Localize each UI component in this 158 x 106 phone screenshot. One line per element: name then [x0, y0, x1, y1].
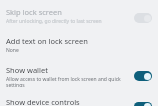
button[interactable]: Toggle Show wallet	[134, 71, 152, 81]
staticText: Show wallet	[6, 65, 48, 75]
button[interactable]: Toggle Show device controls	[134, 102, 152, 106]
button[interactable]: Show wallet	[0, 65, 158, 87]
button[interactable]: Add text on lock screen	[0, 36, 158, 53]
button[interactable]: Skip lock screen	[0, 7, 158, 24]
button[interactable]: Toggle Skip lock screen	[134, 13, 152, 23]
staticText: Add text on lock screen	[6, 36, 88, 46]
staticText: Allow access to wallet from lock screen …	[6, 76, 121, 82]
staticText: settings	[6, 82, 25, 87]
staticText: After unlocking, go directly to last scr…	[6, 18, 102, 24]
button[interactable]: Show device controls	[0, 97, 158, 106]
staticText: None	[6, 47, 19, 53]
staticText: Skip lock screen	[6, 7, 62, 17]
staticText: Show device controls	[6, 97, 80, 106]
